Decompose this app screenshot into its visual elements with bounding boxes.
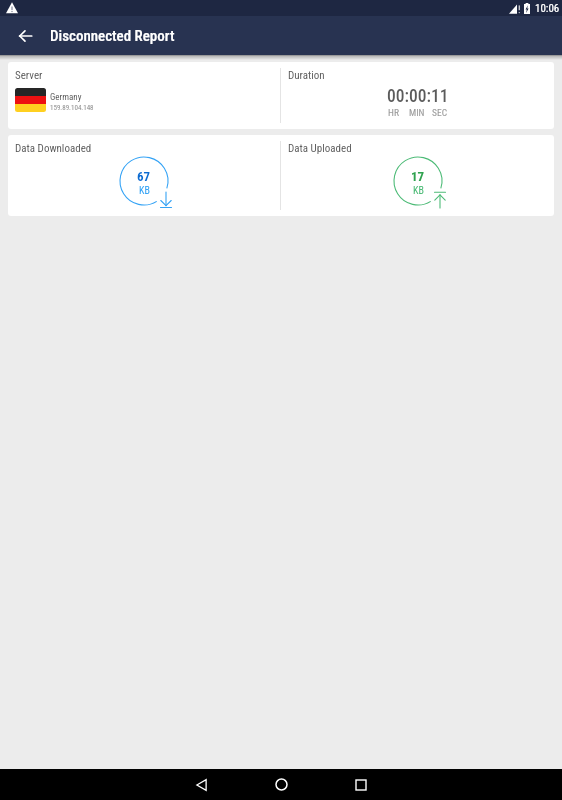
- staticText: 67: [137, 169, 151, 184]
- staticText: Germany: [50, 92, 82, 103]
- staticText: 00:00:11: [387, 86, 449, 107]
- staticText: 159.89.104.148: [50, 104, 94, 112]
- button[interactable]: Back: [11, 22, 39, 50]
- staticText: KB: [413, 185, 424, 197]
- staticText: 10:06: [535, 2, 560, 15]
- staticText: 17: [411, 169, 425, 184]
- staticText: Data Downloaded: [15, 142, 92, 155]
- staticText: Disconnected Report: [50, 27, 175, 45]
- staticText: KB: [139, 185, 150, 197]
- staticText: MIN: [409, 107, 425, 118]
- staticText: HR: [388, 107, 399, 118]
- button[interactable]: Home: [250, 769, 312, 800]
- staticText: SEC: [432, 107, 448, 118]
- button[interactable]: Recent apps: [330, 769, 392, 800]
- button[interactable]: Back: [170, 769, 232, 800]
- staticText: Data Uploaded: [288, 142, 352, 155]
- staticText: Duration: [288, 69, 325, 82]
- staticText: Server: [15, 69, 43, 82]
